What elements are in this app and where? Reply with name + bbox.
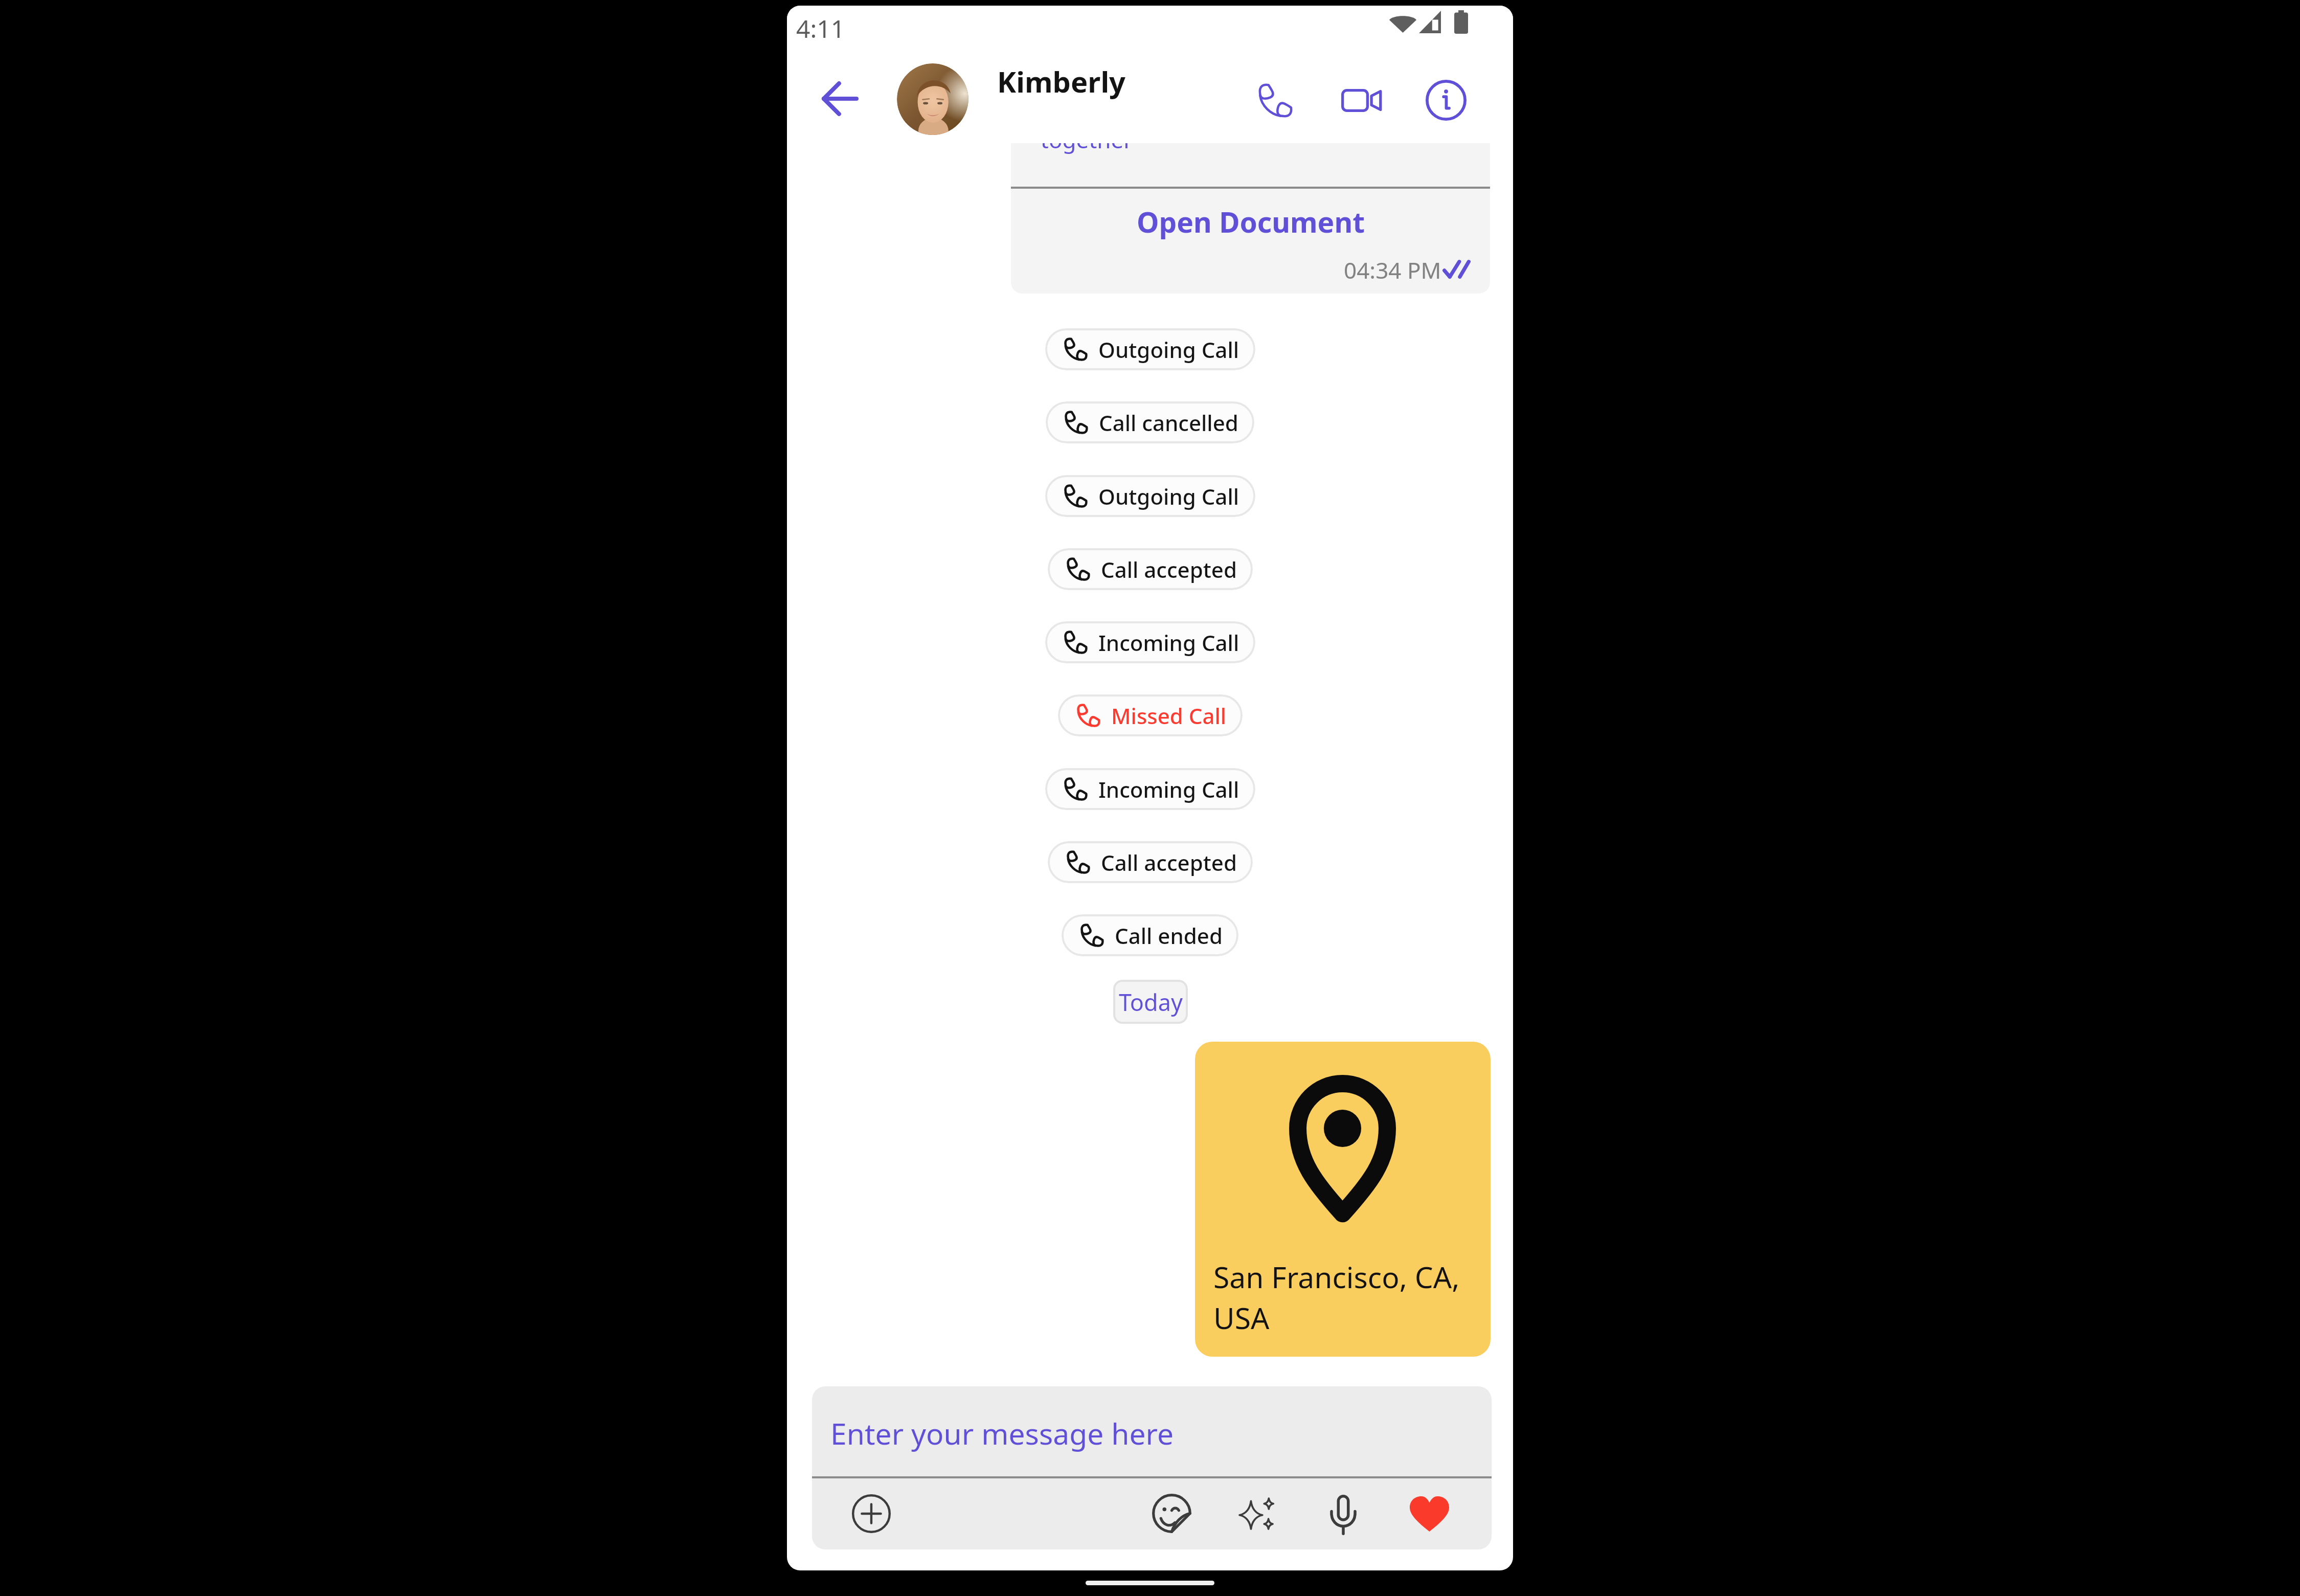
staticText: 04:34 PM	[1344, 255, 1441, 285]
button[interactable]: together	[1011, 87, 1490, 294]
staticText: Incoming Call	[1098, 628, 1239, 657]
staticText: together	[1041, 124, 1133, 155]
button[interactable]: Call accepted	[1048, 841, 1253, 883]
button[interactable]: Incoming Call	[1045, 768, 1255, 810]
staticText: Missed Call	[1111, 701, 1227, 730]
button[interactable]: Call accepted	[1048, 548, 1253, 590]
button[interactable]: Today	[1113, 980, 1188, 1024]
staticText: Call accepted	[1101, 555, 1237, 584]
staticText: Incoming Call	[1098, 775, 1239, 804]
staticText: 4:11	[796, 12, 845, 45]
button[interactable]: Enter your message here	[812, 1386, 1492, 1476]
button[interactable]: Back	[813, 72, 867, 126]
staticText: Enter your message here	[830, 1413, 1174, 1453]
staticText: Outgoing Call	[1098, 335, 1239, 364]
staticText: Kimberly	[997, 62, 1126, 101]
staticText: Open Document	[1137, 203, 1365, 241]
staticText: Call ended	[1115, 921, 1223, 950]
button[interactable]: Contact info	[1419, 74, 1473, 127]
button[interactable]: Missed Call	[1058, 694, 1243, 736]
button[interactable]: Profile photo	[897, 63, 968, 135]
button[interactable]: Voice message	[1316, 1487, 1371, 1542]
staticText: Outgoing Call	[1098, 482, 1239, 511]
staticText: Call cancelled	[1099, 408, 1238, 437]
button[interactable]: Call ended	[1062, 914, 1238, 956]
button[interactable]: Stickers	[1144, 1486, 1199, 1541]
button[interactable]: Incoming Call	[1045, 621, 1255, 663]
button[interactable]: Add attachment	[844, 1486, 899, 1541]
staticText: Call accepted	[1101, 848, 1237, 877]
button[interactable]: Call	[1249, 74, 1302, 127]
button[interactable]: Call cancelled	[1046, 401, 1254, 443]
button[interactable]: Effects	[1229, 1486, 1284, 1541]
button[interactable]: Outgoing Call	[1045, 475, 1255, 517]
button[interactable]: Video call	[1335, 74, 1388, 127]
button[interactable]: Send heart	[1402, 1486, 1457, 1541]
button[interactable]: Kimberly	[997, 59, 1207, 103]
button[interactable]: Outgoing Call	[1045, 328, 1255, 370]
staticText: Today	[1119, 986, 1183, 1018]
staticText: San Francisco, CA, USA	[1213, 1257, 1464, 1337]
button[interactable]: San Francisco, CA, USA	[1195, 1042, 1491, 1357]
